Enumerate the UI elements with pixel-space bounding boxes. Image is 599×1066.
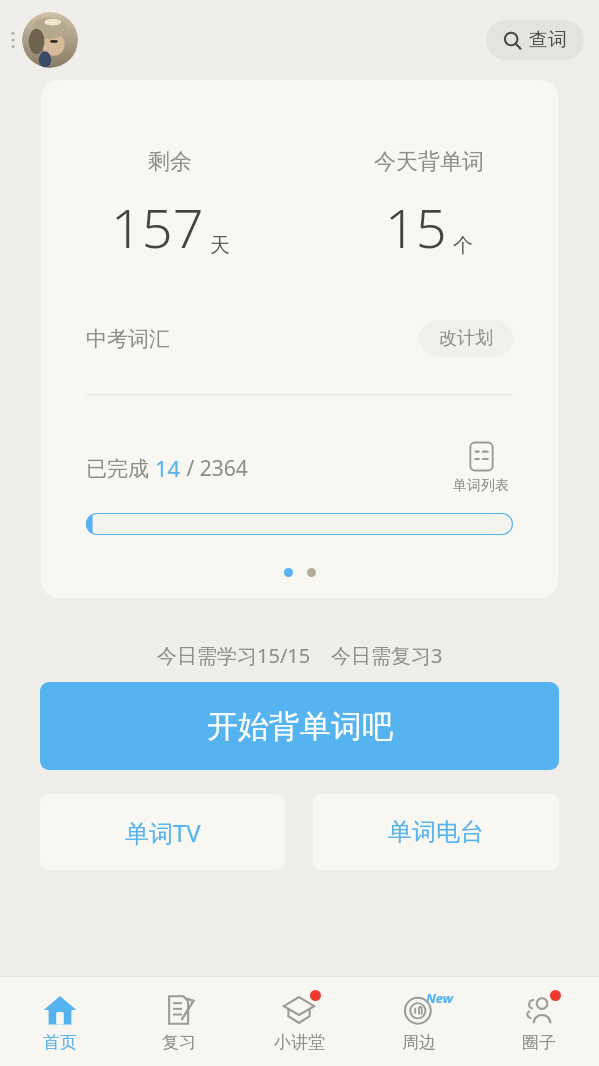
staticText: 小讲堂 (274, 1032, 325, 1053)
button[interactable]: 单词TV (40, 794, 285, 870)
staticText: 中考词汇 (86, 326, 170, 352)
button[interactable]: New (359, 977, 479, 1066)
staticText: 天 (210, 233, 230, 258)
button[interactable]: 单词电台 (313, 794, 559, 870)
staticText: 圈子 (522, 1032, 556, 1053)
staticText: 复习 (162, 1032, 196, 1053)
staticText: 单词电台 (388, 817, 484, 847)
staticText: 14 (155, 453, 181, 483)
button[interactable]: 首页 (0, 977, 119, 1066)
staticText: 157 (111, 190, 204, 264)
staticText: New (426, 989, 454, 1007)
button[interactable]: 开始背单词吧 (40, 682, 559, 770)
button[interactable]: 圈子 (479, 977, 599, 1066)
staticText: 已完成 (86, 454, 155, 483)
staticText: 首页 (43, 1032, 77, 1053)
staticText: 今日需学习15/15 (157, 642, 311, 669)
button[interactable]: 查词 (486, 20, 584, 60)
button[interactable]: 小讲堂 (239, 977, 359, 1066)
staticText: 改计划 (439, 327, 493, 350)
staticText: 单词列表 (453, 477, 509, 495)
button[interactable]: 复习 (119, 977, 239, 1066)
staticText: 单词TV (125, 816, 201, 849)
staticText: 查词 (529, 28, 567, 52)
staticText: 个 (453, 233, 473, 258)
button[interactable]: 剩余 (41, 80, 558, 598)
staticText: 今天背单词 (374, 148, 484, 176)
button[interactable]: Profile avatar (22, 12, 78, 68)
staticText: 剩余 (148, 148, 192, 176)
staticText: / 2364 (181, 454, 248, 483)
button[interactable]: 改计划 (419, 320, 513, 357)
staticText: 15 (385, 190, 447, 264)
staticText: 周边 (402, 1032, 436, 1053)
button[interactable]: 单词列表 (449, 437, 513, 499)
staticText: 开始背单词吧 (207, 707, 393, 746)
staticText: 今日需复习3 (331, 642, 443, 669)
